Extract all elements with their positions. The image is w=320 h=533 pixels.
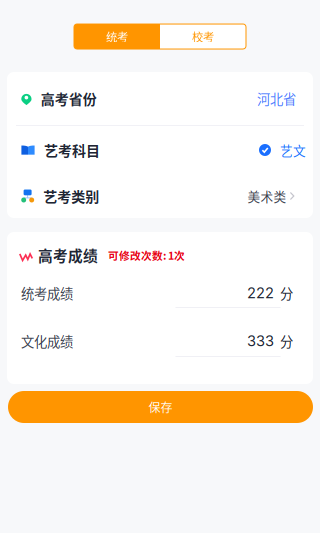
staticText: 分 xyxy=(280,283,293,303)
staticText: 艺文 xyxy=(280,141,306,159)
button[interactable]: 艺考科目 xyxy=(7,126,313,174)
staticText: 333 xyxy=(247,332,274,350)
staticText: 艺考类别 xyxy=(43,186,99,206)
staticText: 美术类 xyxy=(247,187,286,205)
staticText: 校考 xyxy=(192,28,214,45)
button[interactable]: 艺考类别 xyxy=(7,174,313,218)
staticText: 河北省 xyxy=(257,89,296,108)
staticText: 文化成绩 xyxy=(21,331,73,351)
staticText: 可修改次数: 1次 xyxy=(108,247,185,263)
button[interactable]: 保存 xyxy=(8,391,313,423)
staticText: 222 xyxy=(247,284,274,302)
staticText: 统考 xyxy=(106,28,128,45)
staticText: 高考成绩 xyxy=(38,244,98,266)
button[interactable]: 统考 xyxy=(74,24,160,49)
staticText: 高考省份 xyxy=(41,88,97,109)
staticText: 分 xyxy=(280,331,293,351)
staticText: 统考成绩 xyxy=(21,283,73,303)
button[interactable]: 校考 xyxy=(160,24,246,49)
button[interactable]: 高考省份 xyxy=(7,72,313,125)
staticText: 保存 xyxy=(148,398,172,416)
staticText: 艺考科目 xyxy=(44,140,100,160)
